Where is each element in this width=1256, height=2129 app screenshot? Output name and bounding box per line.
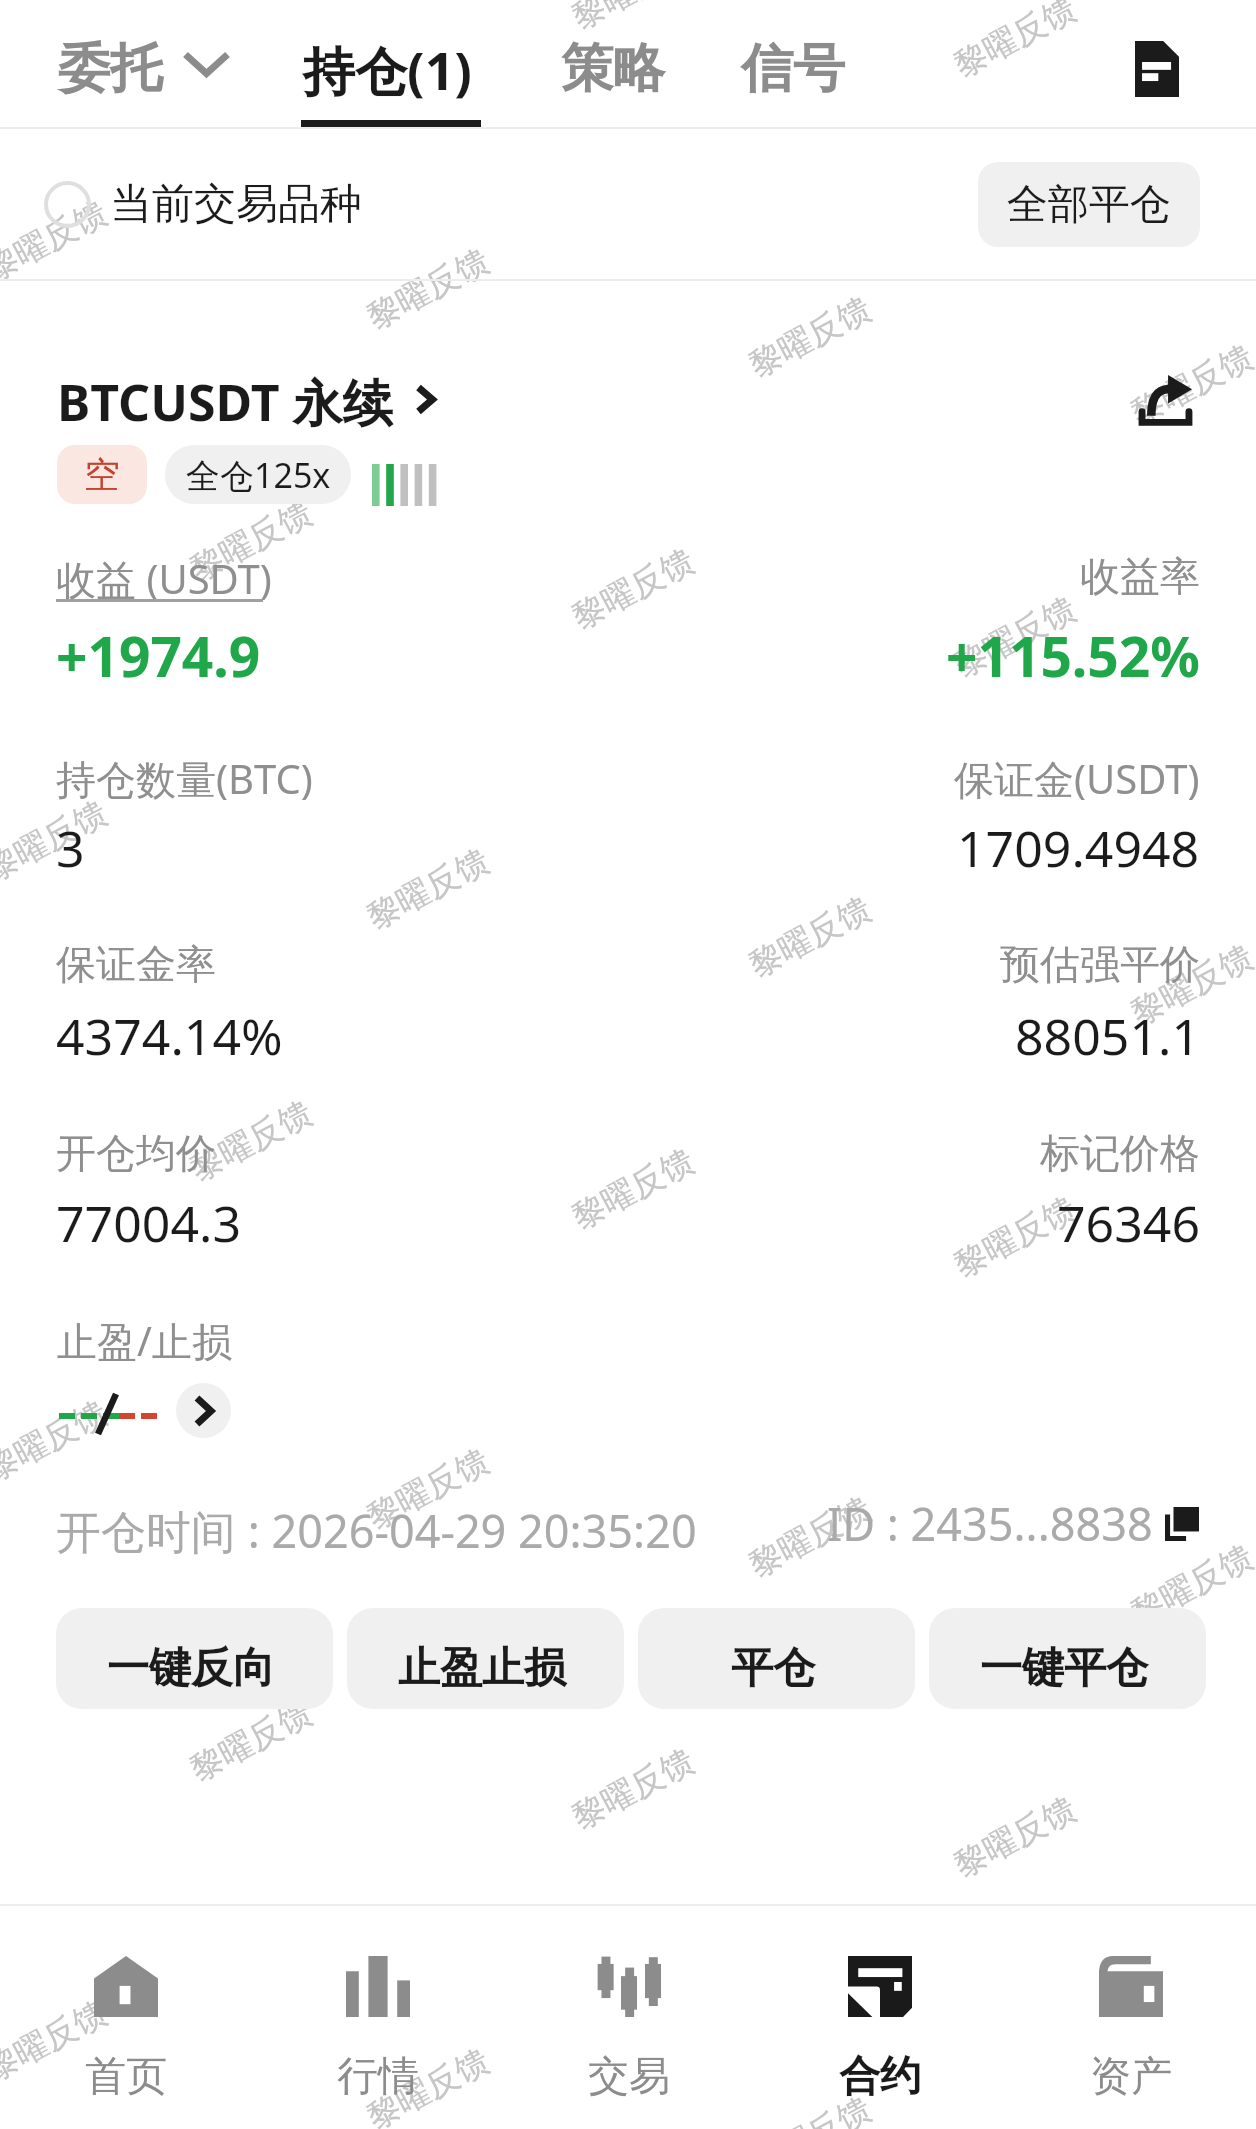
staticText: 88051.1 (1015, 1002, 1200, 1070)
staticText: 黎曜反馈 (565, 0, 701, 39)
button[interactable]: 首页 (0, 1906, 252, 2129)
staticText: 资产 (1090, 2051, 1172, 2103)
staticText: 4374.14% (56, 1002, 283, 1070)
staticText: 黎曜反馈 (360, 1439, 496, 1539)
staticText: ID : 2435...8838 (827, 1493, 1153, 1554)
staticText: 黎曜反馈 (0, 791, 114, 891)
staticText: 3 (56, 814, 85, 882)
staticText: 黎曜反馈 (742, 287, 878, 387)
button[interactable]: 平仓 (638, 1608, 915, 1709)
staticText: 黎曜反馈 (947, 1187, 1083, 1287)
staticText: 收益 (USDT) (56, 551, 272, 606)
staticText: 黎曜反馈 (742, 1487, 878, 1587)
staticText: 黎曜反馈 (565, 1139, 701, 1239)
staticText: 黎曜反馈 (360, 239, 496, 339)
staticText: 首页 (85, 2051, 167, 2103)
staticText: 持仓数量(BTC) (56, 751, 313, 806)
staticText: 黎曜反馈 (0, 1991, 114, 2091)
staticText: 黎曜反馈 (1124, 335, 1256, 435)
button[interactable]: 信号 (741, 24, 845, 114)
staticText: 黎曜反馈 (947, 587, 1083, 687)
staticText: 黎曜反馈 (947, 1787, 1083, 1887)
staticText: 止盈止损 (398, 1642, 566, 1695)
staticText: 保证金率 (56, 939, 216, 989)
button[interactable]: 委托 (58, 24, 231, 114)
staticText: 当前交易品种 (110, 178, 362, 231)
button[interactable]: 合约 (754, 1906, 1005, 2129)
button[interactable]: 止盈止损 (347, 1608, 624, 1709)
staticText: 开仓时间 : 2026-04-29 20:35:20 (56, 1500, 697, 1561)
button[interactable]: 行情 (252, 1906, 503, 2129)
staticText: 行情 (337, 2051, 419, 2103)
button[interactable]: 持仓(1) (303, 22, 473, 117)
button[interactable]: ID : 2435...8838 (827, 1493, 1199, 1554)
staticText: 全部平仓 (1007, 179, 1171, 231)
button[interactable]: 交易 (503, 1906, 754, 2129)
staticText: 黎曜反馈 (1124, 1535, 1256, 1635)
staticText: 黎曜反馈 (360, 839, 496, 939)
staticText: 保证金(USDT) (954, 751, 1200, 806)
staticText: 空 (84, 452, 120, 497)
staticText: 止盈/止损 (57, 1313, 232, 1368)
button[interactable]: 一键平仓 (929, 1608, 1206, 1709)
button[interactable]: Edit take profit and stop loss (176, 1383, 231, 1438)
staticText: 黎曜反馈 (565, 1739, 701, 1839)
staticText: 黎曜反馈 (0, 191, 114, 291)
staticText: 黎曜反馈 (1124, 935, 1256, 1035)
staticText: 标记价格 (1040, 1128, 1200, 1178)
staticText: 预估强平价 (1000, 939, 1200, 989)
staticText: +115.52% (946, 618, 1200, 693)
staticText: +1974.9 (56, 618, 261, 693)
staticText: 全仓125x (186, 452, 331, 498)
staticText: 黎曜反馈 (360, 2039, 496, 2129)
staticText: 黎曜反馈 (183, 1691, 319, 1791)
staticText: 合约 (839, 2051, 921, 2103)
staticText: 一键平仓 (980, 1642, 1148, 1695)
staticText: 黎曜反馈 (565, 539, 701, 639)
staticText: 一键反向 (107, 1642, 275, 1695)
button[interactable]: Share (1115, 350, 1215, 450)
staticText: 77004.3 (56, 1189, 241, 1257)
staticText: BTCUSDT 永续 (57, 368, 393, 436)
staticText: 1709.4948 (957, 814, 1200, 882)
button[interactable]: 当前交易品种 (0, 164, 376, 245)
staticText: 黎曜反馈 (947, 0, 1083, 87)
button[interactable]: BTCUSDT 永续 (57, 368, 436, 436)
button[interactable]: 全仓125x (165, 445, 351, 504)
staticText: 委托 (58, 36, 162, 102)
button[interactable]: 资产 (1005, 1906, 1256, 2129)
staticText: 黎曜反馈 (183, 491, 319, 591)
staticText: 开仓均价 (56, 1128, 216, 1178)
staticText: 黎曜反馈 (0, 1391, 114, 1491)
staticText: 黎曜反馈 (742, 2087, 878, 2129)
button[interactable]: 策略 (561, 24, 665, 114)
button[interactable]: 一键反向 (56, 1608, 333, 1709)
staticText: 收益率 (1080, 551, 1200, 601)
button[interactable]: 全部平仓 (978, 162, 1200, 247)
staticText: 平仓 (731, 1642, 815, 1695)
staticText: 黎曜反馈 (742, 887, 878, 987)
staticText: 黎曜反馈 (183, 1091, 319, 1191)
staticText: 76346 (1057, 1189, 1200, 1257)
button[interactable]: Order records (1103, 15, 1211, 123)
staticText: 交易 (588, 2051, 670, 2103)
